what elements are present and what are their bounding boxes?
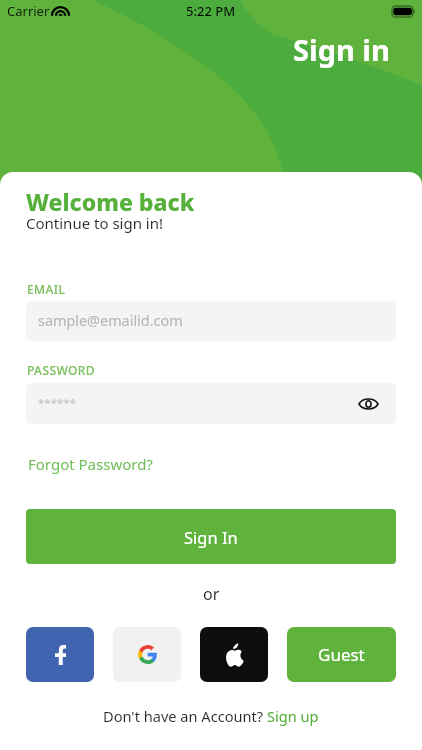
- staticText: Sign In: [184, 526, 238, 548]
- button[interactable]: Sign in with Apple: [200, 627, 268, 682]
- button[interactable]: Sign In: [26, 509, 396, 564]
- staticText: sample@emailid.com: [38, 311, 183, 331]
- staticText: PASSWORD: [27, 362, 95, 378]
- staticText: Forgot Password?: [28, 454, 153, 474]
- staticText: Carrier: [7, 2, 50, 20]
- button[interactable]: Guest: [287, 627, 396, 682]
- staticText: 5:22 PM: [186, 2, 236, 20]
- button[interactable]: Sign in with Google: [113, 627, 181, 682]
- button[interactable]: Forgot Password?: [26, 452, 155, 476]
- staticText: EMAIL: [27, 281, 66, 297]
- staticText: Guest: [318, 643, 365, 666]
- staticText: Don't have an Account? Sign up: [103, 706, 319, 726]
- button[interactable]: Sign in with Facebook: [26, 627, 94, 682]
- staticText: Welcome back: [26, 186, 195, 217]
- button[interactable]: Don't have an Account? Sign up: [0, 706, 422, 726]
- staticText: or: [203, 583, 220, 605]
- button[interactable]: sample@emailid.com: [26, 301, 396, 341]
- button[interactable]: ******: [26, 383, 396, 424]
- button[interactable]: Show password: [353, 389, 383, 419]
- staticText: Sign in: [293, 30, 390, 69]
- staticText: ******: [38, 395, 77, 411]
- staticText: Continue to sign in!: [26, 213, 164, 233]
